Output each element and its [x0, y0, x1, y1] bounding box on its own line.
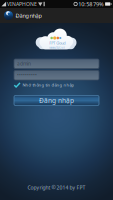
- staticText: Đăng nhập: [39, 96, 74, 105]
- staticText: FPT Cloud: [49, 40, 65, 46]
- button[interactable]: Đăng nhập: [0, 8, 113, 23]
- staticText: Đăng nhập: [15, 12, 41, 19]
- staticText: 10:58: [78, 0, 92, 8]
- staticText: 79%: [93, 0, 104, 8]
- staticText: Copyright © 2014 by FPT: [27, 184, 85, 191]
- staticText: admin: [17, 60, 31, 67]
- staticText: www.fpt.vn: [49, 45, 65, 50]
- staticText: Nhớ thông tin đăng nhập: [22, 82, 74, 88]
- button[interactable]: Nhớ thông tin đăng nhập: [14, 81, 99, 88]
- staticText: ••••••••••: [17, 72, 37, 78]
- staticText: VINAPHONE: [7, 0, 37, 7]
- button[interactable]: Đăng nhập: [14, 95, 99, 105]
